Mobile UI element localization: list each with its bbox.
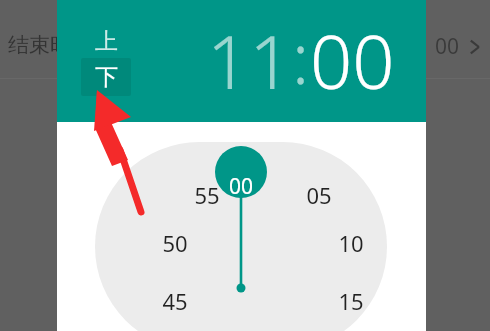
button[interactable]: 05 [297, 180, 341, 210]
staticText: 00 [310, 10, 395, 111]
staticText: 10 [338, 228, 364, 258]
staticText: : [292, 9, 310, 104]
staticText: 55 [194, 180, 220, 210]
button[interactable]: 11 [207, 10, 292, 111]
staticText: 结束时间 [8, 32, 92, 58]
staticText: 45 [162, 286, 188, 316]
button[interactable]: 45 [153, 286, 197, 316]
button[interactable]: 55 [185, 180, 229, 210]
staticText: 11 [207, 10, 292, 111]
button[interactable]: 上 [81, 24, 131, 58]
button[interactable]: 10 [329, 228, 373, 258]
staticText: 00 [229, 172, 254, 201]
staticText: 上 [95, 27, 118, 56]
staticText: 下 [95, 63, 118, 92]
button[interactable]: 15 [329, 286, 373, 316]
button[interactable]: 下 [81, 58, 131, 96]
button[interactable]: 50 [153, 228, 197, 258]
staticText: 50 [162, 228, 188, 258]
button[interactable]: 00 [310, 10, 395, 111]
button[interactable] [95, 142, 387, 331]
staticText: 15 [338, 286, 364, 316]
other: Pointer arrow [0, 0, 490, 331]
staticText: 00 [435, 32, 460, 61]
staticText: 05 [306, 180, 332, 210]
